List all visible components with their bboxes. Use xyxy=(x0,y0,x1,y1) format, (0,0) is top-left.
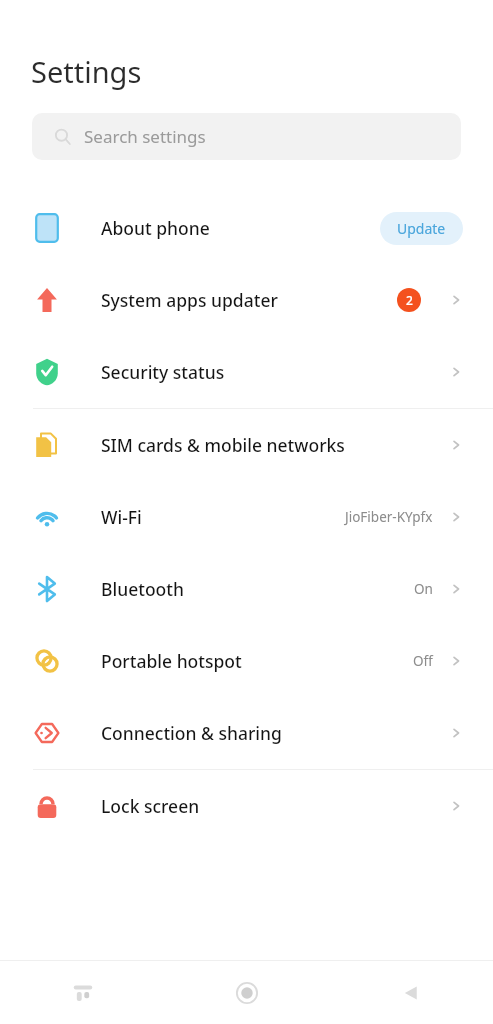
staticText: Search settings xyxy=(84,125,206,148)
staticText: JioFiber-KYpfx xyxy=(345,508,433,526)
button[interactable]: Update xyxy=(380,212,463,245)
staticText: SIM cards & mobile networks xyxy=(101,433,449,457)
staticText: 2 xyxy=(406,292,413,308)
staticText: Connection & sharing xyxy=(101,721,449,745)
staticText: Lock screen xyxy=(101,794,449,818)
staticText: About phone xyxy=(101,216,380,240)
button[interactable]: Security status xyxy=(0,336,493,408)
button[interactable]: Wi-Fi xyxy=(0,481,493,553)
button[interactable]: Connection & sharing xyxy=(0,697,493,769)
staticText: Settings xyxy=(31,52,142,91)
button[interactable]: Recent apps xyxy=(0,961,165,1024)
staticText: Bluetooth xyxy=(101,577,414,601)
button[interactable]: Home xyxy=(165,961,329,1024)
staticText: Off xyxy=(413,652,433,670)
button[interactable]: About phone xyxy=(0,192,493,264)
button[interactable]: Search settings xyxy=(32,113,461,160)
button[interactable]: Portable hotspot xyxy=(0,625,493,697)
staticText: Wi-Fi xyxy=(101,505,345,529)
button[interactable]: System apps updater xyxy=(0,264,493,336)
staticText: Portable hotspot xyxy=(101,649,413,673)
staticText: Security status xyxy=(101,360,449,384)
button[interactable]: Bluetooth xyxy=(0,553,493,625)
button[interactable]: SIM cards & mobile networks xyxy=(0,409,493,481)
staticText: Update xyxy=(397,219,446,238)
button[interactable]: Lock screen xyxy=(0,770,493,842)
staticText: System apps updater xyxy=(101,288,397,312)
staticText: On xyxy=(414,580,433,598)
